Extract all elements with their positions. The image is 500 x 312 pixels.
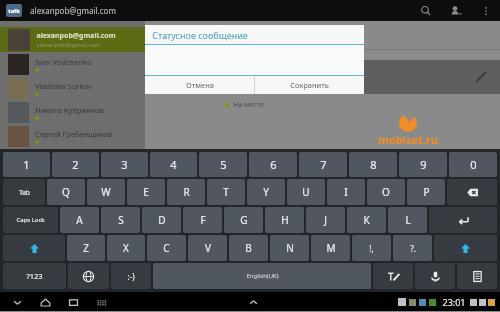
button[interactable]: R <box>167 179 205 205</box>
button[interactable]: Shift <box>3 235 65 261</box>
button[interactable]: L <box>388 207 427 233</box>
staticText: Caps Lock <box>16 216 45 224</box>
button[interactable]: Language <box>68 263 109 289</box>
button[interactable]: :-) <box>111 263 151 289</box>
button[interactable]: D <box>142 207 181 233</box>
staticText: Статусное сообщение <box>152 29 248 41</box>
button[interactable]: N <box>270 235 309 261</box>
button[interactable]: F <box>183 207 222 233</box>
button[interactable]: H <box>265 207 304 233</box>
staticText: T <box>223 185 229 199</box>
staticText: W <box>101 185 111 199</box>
button[interactable]: Сергей Гребенщиков <box>0 124 145 148</box>
button[interactable]: Clipboard <box>457 263 497 289</box>
button[interactable]: 3 <box>101 152 148 177</box>
button[interactable]: Caps Lock <box>3 207 58 233</box>
button[interactable]: 6 <box>249 152 297 177</box>
staticText: 7 <box>320 157 327 172</box>
staticText: ?123 <box>26 271 43 281</box>
button[interactable]: 2 <box>52 152 99 177</box>
staticText: Q <box>62 185 70 199</box>
button[interactable]: Add contact <box>448 3 464 19</box>
staticText: 2 <box>72 157 79 172</box>
button[interactable]: Shift <box>434 235 497 261</box>
staticText: Сохранить <box>290 80 329 90</box>
staticText: alexanpob@gmail.com <box>36 41 101 49</box>
button[interactable]: Vladislav Surkov <box>0 76 145 100</box>
button[interactable]: M <box>311 235 350 261</box>
staticText: ?. <box>410 243 416 254</box>
button[interactable]: !, <box>352 235 391 261</box>
button[interactable]: 8 <box>349 152 397 177</box>
button[interactable]: Q <box>47 179 85 205</box>
button[interactable]: Никита Куприянов <box>0 100 145 124</box>
button[interactable]: Сохранить <box>255 76 364 94</box>
staticText: Y <box>263 185 269 199</box>
button[interactable]: Hide keyboard <box>10 295 24 309</box>
button[interactable]: W <box>87 179 125 205</box>
button[interactable]: Recent apps <box>66 295 80 309</box>
staticText: P <box>423 185 430 199</box>
staticText: 8 <box>370 157 377 172</box>
button[interactable]: Switch keyboard <box>94 295 108 309</box>
button[interactable]: Handwriting <box>373 263 413 289</box>
button[interactable]: Voice input <box>415 263 455 289</box>
button[interactable]: O <box>367 179 405 205</box>
staticText: Vladislav Surkov <box>35 81 92 91</box>
button[interactable]: ?123 <box>3 263 66 289</box>
button[interactable]: Y <box>247 179 285 205</box>
button[interactable]: Enter <box>429 207 497 233</box>
staticText: alexanpob@gmail.com <box>30 5 116 16</box>
staticText: Отмена <box>186 80 214 90</box>
button[interactable]: 1 <box>3 152 50 177</box>
staticText: K <box>363 213 370 227</box>
staticText: X <box>123 241 129 255</box>
button[interactable]: C <box>147 235 186 261</box>
button[interactable]: Ivan Vodchenko <box>0 52 145 76</box>
button[interactable]: 5 <box>199 152 247 177</box>
button[interactable]: 4 <box>150 152 197 177</box>
button[interactable]: T <box>207 179 245 205</box>
button[interactable]: U <box>287 179 325 205</box>
button[interactable]: talk <box>6 4 22 17</box>
button[interactable]: English(UK) <box>153 263 371 289</box>
button[interactable]: I <box>327 179 365 205</box>
button[interactable]: P <box>407 179 445 205</box>
button[interactable]: Search <box>418 3 434 19</box>
button[interactable]: 7 <box>299 152 347 177</box>
button[interactable]: Tab <box>3 179 45 205</box>
button[interactable]: 0 <box>449 152 497 177</box>
button[interactable]: S <box>101 207 140 233</box>
button[interactable]: A <box>60 207 99 233</box>
button[interactable]: X <box>107 235 145 261</box>
button[interactable]: More options <box>478 3 494 19</box>
staticText: alexanpob@gmail.com <box>36 31 116 41</box>
button[interactable]: Home <box>38 295 52 309</box>
button[interactable]: Notifications <box>246 295 260 309</box>
staticText: E <box>143 185 149 199</box>
staticText: S <box>118 213 124 227</box>
button[interactable]: B <box>229 235 268 261</box>
button[interactable]: alexanpob@gmail.com <box>0 27 145 52</box>
staticText: M <box>326 241 336 255</box>
staticText: R <box>183 185 190 199</box>
button[interactable]: ?. <box>393 235 432 261</box>
staticText: Z <box>83 241 89 255</box>
staticText: C <box>163 241 170 255</box>
button[interactable]: Z <box>67 235 105 261</box>
button[interactable]: G <box>224 207 263 233</box>
staticText: A <box>76 213 83 227</box>
button[interactable]: V <box>188 235 227 261</box>
button[interactable]: K <box>347 207 386 233</box>
button[interactable]: 9 <box>399 152 447 177</box>
staticText: B <box>245 241 252 255</box>
button[interactable]: J <box>306 207 345 233</box>
button[interactable]: E <box>127 179 165 205</box>
staticText: 9 <box>420 157 427 172</box>
button[interactable]: Backspace <box>447 179 497 205</box>
staticText: :-) <box>127 271 135 282</box>
staticText: mobiset.ru <box>378 132 438 147</box>
button[interactable]: Edit <box>474 70 488 84</box>
button[interactable]: Отмена <box>145 76 254 94</box>
